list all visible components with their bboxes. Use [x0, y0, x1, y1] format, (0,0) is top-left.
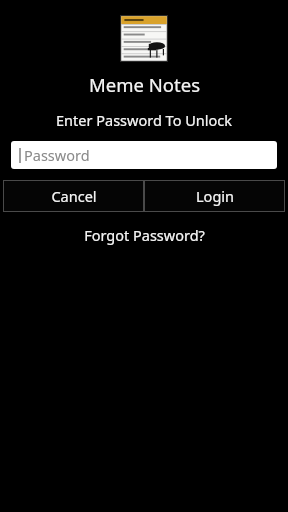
- button[interactable]: Forgot Password?: [84, 225, 205, 245]
- button[interactable]: Login: [144, 180, 285, 212]
- staticText: Password: [24, 145, 90, 165]
- button[interactable]: Cancel: [3, 180, 144, 212]
- button[interactable]: Password: [11, 141, 277, 169]
- staticText: Cancel: [51, 186, 97, 206]
- staticText: Meme Notes: [89, 72, 200, 97]
- staticText: Enter Password To Unlock: [56, 110, 232, 130]
- staticText: Forgot Password?: [84, 225, 205, 245]
- staticText: Login: [196, 186, 234, 206]
- other: Meme Notes app icon: [120, 15, 168, 62]
